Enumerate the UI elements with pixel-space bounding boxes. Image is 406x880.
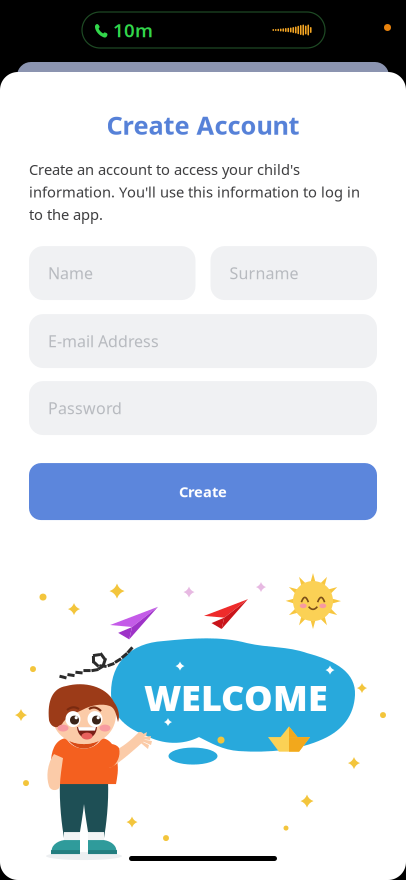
staticText: Name bbox=[48, 262, 93, 284]
staticText: E-mail Address bbox=[48, 330, 159, 352]
button[interactable]: Create bbox=[29, 463, 377, 520]
button[interactable]: Password bbox=[29, 381, 377, 435]
staticText: Create an account to access your child's… bbox=[29, 160, 360, 224]
staticText: WELCOME bbox=[144, 673, 328, 721]
staticText: Create bbox=[179, 482, 227, 501]
button[interactable]: Surname bbox=[210, 246, 377, 300]
staticText: Create Account bbox=[106, 108, 299, 142]
staticText: Surname bbox=[229, 262, 298, 284]
staticText: 10m bbox=[113, 18, 153, 42]
button[interactable]: E-mail Address bbox=[29, 314, 377, 368]
staticText: Password bbox=[48, 397, 122, 419]
button[interactable]: Name bbox=[29, 246, 195, 300]
